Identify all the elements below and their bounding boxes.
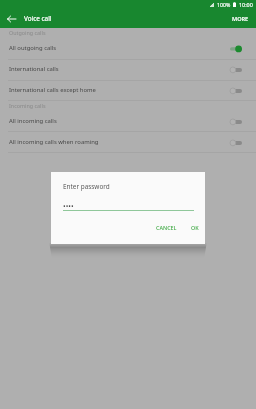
staticText: All incoming calls: [9, 117, 57, 125]
staticText: International calls except home: [9, 86, 96, 94]
button[interactable]: International calls except home: [0, 79, 256, 100]
staticText: ••••: [63, 202, 74, 212]
button[interactable]: All incoming calls when roaming: [0, 131, 256, 152]
staticText: Incoming calls: [9, 102, 46, 109]
staticText: MORE: [232, 15, 249, 23]
staticText: 10:00: [239, 1, 253, 8]
staticText: All outgoing calls: [9, 44, 57, 52]
button[interactable]: OK: [186, 220, 204, 235]
staticText: OK: [191, 224, 199, 231]
button[interactable]: MORE: [225, 11, 256, 26]
staticText: Enter password: [63, 182, 110, 191]
button[interactable]: CANCEL: [151, 220, 182, 235]
staticText: International calls: [9, 65, 59, 73]
button[interactable]: International calls: [0, 58, 256, 79]
button[interactable]: All incoming calls: [0, 110, 256, 131]
button[interactable]: Navigate up: [0, 11, 22, 26]
staticText: CANCEL: [156, 224, 177, 231]
button[interactable]: All outgoing calls: [0, 37, 256, 58]
staticText: 100%: [217, 1, 231, 8]
staticText: Voice call: [24, 14, 52, 23]
staticText: Outgoing calls: [9, 29, 46, 36]
staticText: All incoming calls when roaming: [9, 138, 99, 146]
